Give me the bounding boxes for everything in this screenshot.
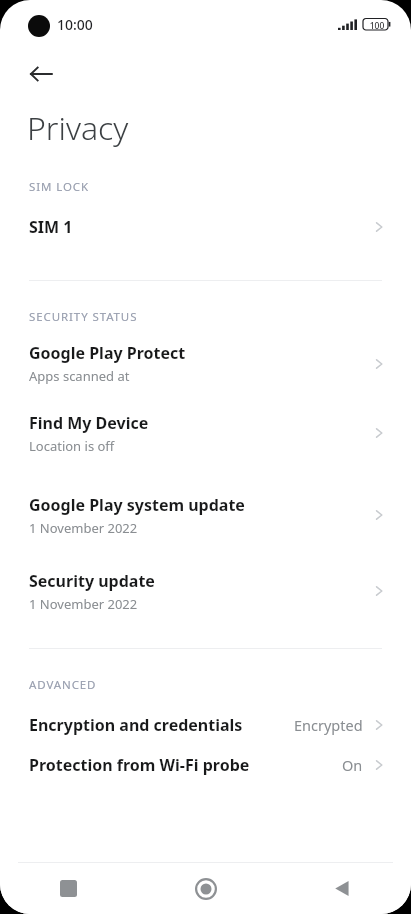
staticText: On [342, 755, 363, 775]
button[interactable]: Back [13, 46, 69, 102]
staticText: 1 November 2022 [29, 519, 138, 537]
staticText: Protection from Wi-Fi probe [29, 754, 250, 776]
staticText: Encryption and credentials [29, 714, 243, 736]
button[interactable]: Google Play system update [0, 474, 411, 556]
staticText: SIM LOCK [29, 179, 89, 195]
staticText: ADVANCED [29, 677, 97, 693]
staticText: 100 [366, 20, 388, 32]
staticText: SECURITY STATUS [29, 309, 138, 325]
staticText: Encrypted [294, 715, 363, 735]
staticText: 1 November 2022 [29, 595, 138, 613]
staticText: 10:00 [57, 15, 93, 34]
button[interactable]: Find My Device [0, 392, 411, 474]
button[interactable]: SIM 1 [0, 208, 411, 246]
staticText: Apps scanned at [29, 367, 130, 385]
staticText: Google Play Protect [29, 342, 186, 364]
button[interactable]: Protection from Wi-Fi probe [0, 745, 411, 785]
staticText: Security update [29, 570, 155, 592]
button[interactable]: Home [137, 863, 274, 914]
staticText: Privacy [27, 106, 129, 150]
staticText: Find My Device [29, 412, 149, 434]
button[interactable]: Back [274, 863, 411, 914]
staticText: Location is off [29, 437, 115, 455]
button[interactable]: Security update [0, 556, 411, 626]
button[interactable]: Encryption and credentials [0, 705, 411, 745]
button[interactable]: Google Play Protect [0, 335, 411, 392]
staticText: SIM 1 [29, 216, 73, 238]
button[interactable]: Recent apps [0, 863, 137, 914]
staticText: Google Play system update [29, 494, 245, 516]
